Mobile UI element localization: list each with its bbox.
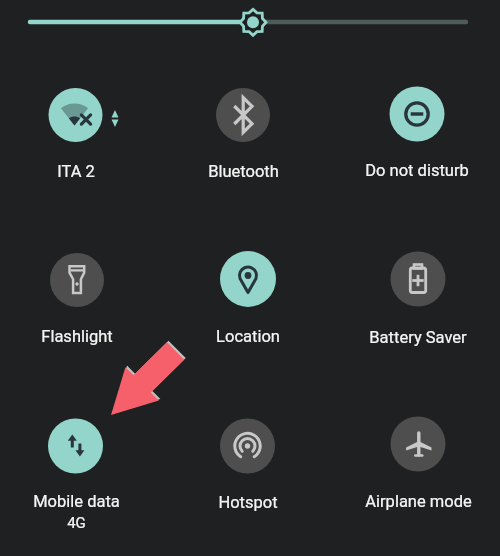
staticText: Airplane mode [365,492,472,511]
staticText: Flashlight [41,327,113,346]
staticText: ITA 2 [57,162,95,181]
button[interactable] [337,410,497,530]
staticText: Hotspot [218,493,278,512]
staticText: Mobile data [33,492,120,511]
staticText: 4G [67,514,86,532]
button[interactable] [163,410,323,530]
staticText: Do not disturb [365,161,469,180]
staticText: Location [216,327,280,346]
button[interactable] [0,80,160,200]
button[interactable] [163,245,323,365]
button[interactable] [163,80,323,200]
button[interactable] [0,245,160,365]
button[interactable] [337,245,497,365]
button[interactable] [0,410,160,540]
button[interactable] [337,80,497,200]
staticText: Battery Saver [369,328,467,347]
button[interactable] [28,6,472,38]
staticText: Bluetooth [208,162,279,181]
